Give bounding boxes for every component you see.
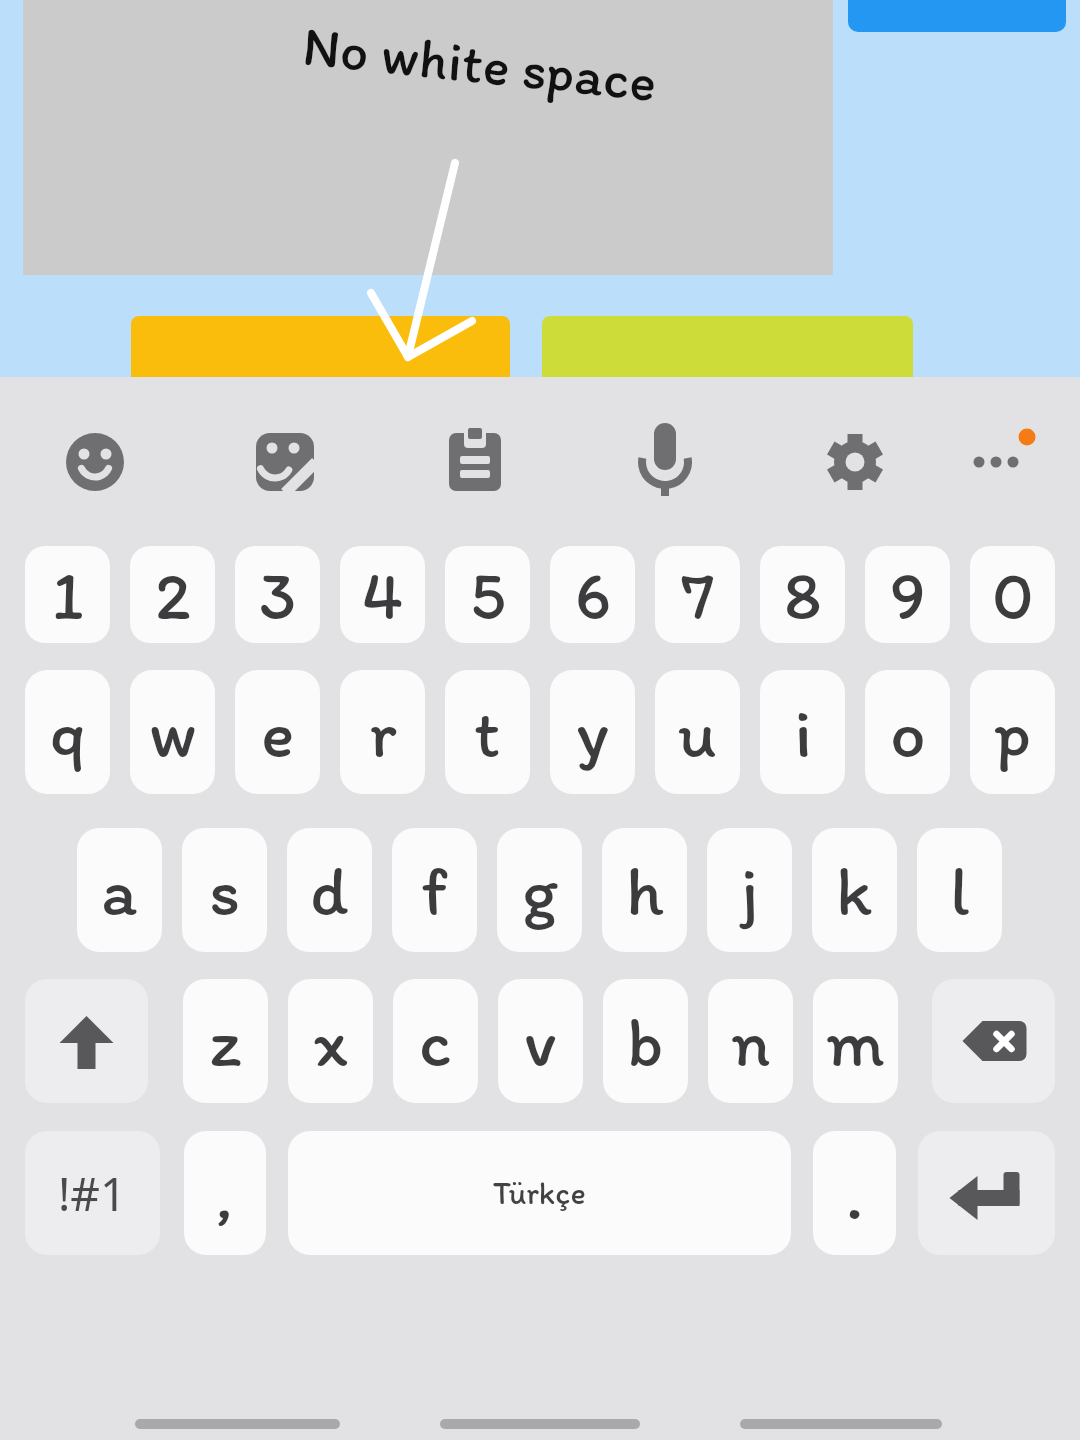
staticText: y (576, 690, 609, 774)
button[interactable]: 6 (550, 546, 635, 643)
staticText: x (313, 999, 348, 1083)
button[interactable]: 9 (865, 546, 950, 643)
button[interactable] (53, 420, 137, 504)
button[interactable]: o (865, 670, 950, 794)
staticText: 1 (52, 554, 84, 636)
staticText: 6 (575, 554, 611, 636)
staticText: . (846, 1151, 864, 1235)
button[interactable]: j (707, 828, 792, 952)
button[interactable]: h (602, 828, 687, 952)
button[interactable]: 2 (130, 546, 215, 643)
button[interactable]: a (77, 828, 162, 952)
button[interactable]: w (130, 670, 215, 794)
button[interactable]: , (184, 1131, 266, 1255)
button[interactable]: c (393, 979, 478, 1103)
staticText: c (419, 999, 452, 1083)
staticText: !#1 (58, 1162, 127, 1225)
button[interactable]: 3 (235, 546, 320, 643)
button[interactable] (952, 414, 1048, 510)
button[interactable] (243, 420, 327, 504)
button[interactable]: z (183, 979, 268, 1103)
staticText: 8 (784, 554, 822, 636)
button[interactable]: q (25, 670, 110, 794)
button[interactable]: e (235, 670, 320, 794)
staticText: 0 (992, 554, 1034, 636)
button[interactable]: d (287, 828, 372, 952)
button[interactable]: u (655, 670, 740, 794)
staticText: 3 (259, 554, 297, 636)
staticText: h (626, 848, 664, 932)
button[interactable]: 7 (655, 546, 740, 643)
button[interactable]: r (340, 670, 425, 794)
staticText: d (310, 848, 349, 932)
button[interactable]: !#1 (25, 1131, 160, 1255)
staticText: b (627, 999, 664, 1083)
staticText: 9 (890, 554, 926, 636)
button[interactable]: x (288, 979, 373, 1103)
button[interactable] (918, 1131, 1055, 1255)
staticText: f (421, 848, 448, 932)
staticText: s (209, 848, 241, 932)
button[interactable]: b (603, 979, 688, 1103)
staticText: z (209, 999, 242, 1083)
button[interactable]: k (812, 828, 897, 952)
staticText: l (950, 848, 970, 932)
staticText: r (369, 690, 397, 774)
staticText: o (890, 690, 926, 774)
staticText: u (678, 690, 717, 774)
staticText: q (50, 690, 86, 774)
button[interactable] (813, 420, 897, 504)
staticText: k (836, 848, 873, 932)
button[interactable]: 5 (445, 546, 530, 643)
staticText: i (794, 690, 812, 774)
button[interactable]: p (970, 670, 1055, 794)
staticText: p (994, 690, 1032, 774)
staticText: , (217, 1151, 234, 1235)
button[interactable]: y (550, 670, 635, 794)
button[interactable] (932, 979, 1055, 1103)
button[interactable]: m (813, 979, 898, 1103)
button[interactable] (433, 420, 517, 504)
staticText: j (741, 848, 759, 932)
staticText: Türkçe (493, 1174, 586, 1212)
staticText: t (474, 690, 501, 774)
button[interactable]: n (708, 979, 793, 1103)
button[interactable]: g (497, 828, 582, 952)
staticText: m (826, 999, 885, 1083)
staticText: w (149, 690, 197, 774)
staticText: 7 (681, 554, 715, 636)
staticText: v (524, 999, 557, 1083)
button[interactable]: Türkçe (288, 1131, 791, 1255)
button[interactable]: 4 (340, 546, 425, 643)
button[interactable]: f (392, 828, 477, 952)
button[interactable]: i (760, 670, 845, 794)
staticText: 5 (470, 554, 506, 636)
staticText: g (522, 848, 558, 932)
button[interactable]: t (445, 670, 530, 794)
button[interactable]: 1 (25, 546, 110, 643)
button[interactable]: 0 (970, 546, 1055, 643)
button[interactable] (25, 979, 148, 1103)
staticText: No white space (299, 12, 661, 115)
button[interactable]: 8 (760, 546, 845, 643)
staticText: e (261, 690, 295, 774)
staticText: a (101, 848, 138, 932)
button[interactable] (623, 420, 707, 504)
staticText: n (731, 999, 771, 1083)
staticText: 4 (362, 554, 403, 636)
staticText: 2 (155, 554, 191, 636)
button[interactable]: s (182, 828, 267, 952)
button[interactable]: . (813, 1131, 896, 1255)
button[interactable]: v (498, 979, 583, 1103)
button[interactable]: l (917, 828, 1002, 952)
